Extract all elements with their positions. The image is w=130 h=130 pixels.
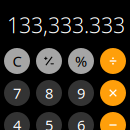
button[interactable]: Toggle sign <box>36 48 62 74</box>
button[interactable]: 7 <box>4 80 30 106</box>
staticText: % <box>75 51 87 71</box>
button[interactable]: Divide <box>100 48 126 74</box>
staticText: 9 <box>77 83 85 103</box>
staticText: 5 <box>45 115 53 130</box>
staticText: C <box>12 51 21 71</box>
button[interactable]: 9 <box>68 80 94 106</box>
button[interactable]: 5 <box>36 112 62 130</box>
staticText: 6 <box>77 115 85 130</box>
button[interactable]: 6 <box>68 112 94 130</box>
button[interactable]: Multiply <box>100 80 126 106</box>
button[interactable]: Percent <box>68 48 94 74</box>
staticText: 8 <box>45 83 53 103</box>
button[interactable]: 4 <box>4 112 30 130</box>
button[interactable]: Subtract <box>100 112 126 130</box>
button[interactable]: Clear <box>4 48 30 74</box>
staticText: 133,333.333 <box>7 11 125 39</box>
staticText: 7 <box>13 83 21 103</box>
button[interactable]: 8 <box>36 80 62 106</box>
staticText: 4 <box>13 115 21 130</box>
